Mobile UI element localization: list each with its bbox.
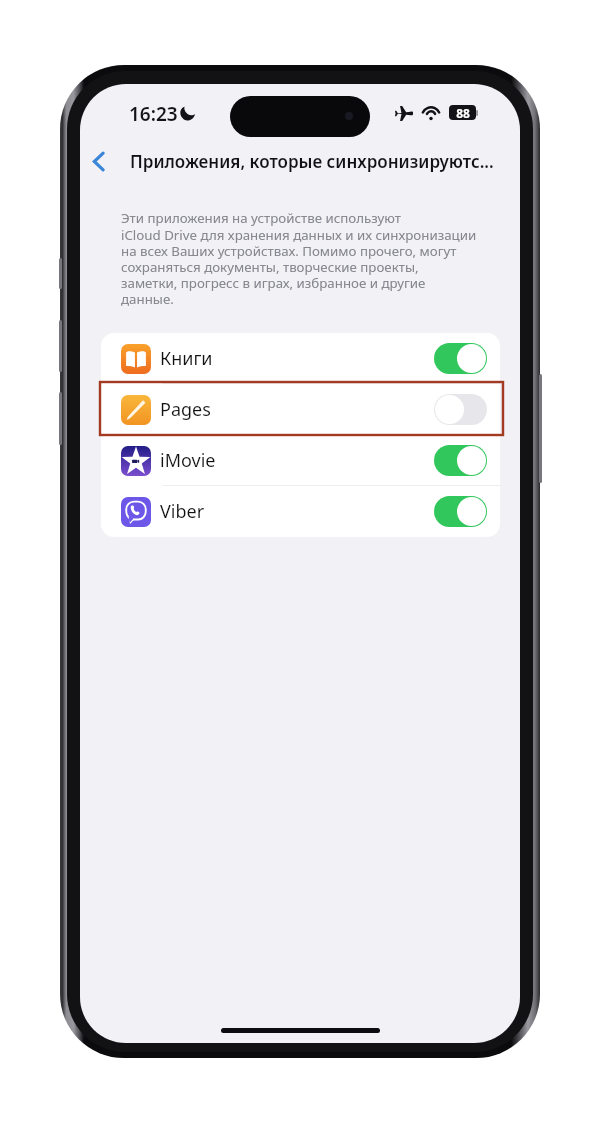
staticText: 88 [456,105,470,120]
button[interactable]: Toggle on [434,496,487,527]
button[interactable]: Книги [101,333,500,384]
button[interactable]: Toggle on [434,445,487,476]
button[interactable]: Toggle on [434,343,487,374]
staticText: 16:23 [129,101,178,127]
button[interactable]: Pages [101,384,500,435]
button[interactable]: Viber [101,486,500,537]
button[interactable]: iMovie [101,435,500,486]
staticText: Pages [160,397,211,422]
staticText: Приложения, которые синхронизируютс... [130,150,494,173]
button[interactable]: Back [80,143,116,179]
staticText: Книги [160,346,213,371]
button[interactable]: Toggle off [434,394,487,425]
staticText: Эти приложения на устройстве используют … [121,209,477,308]
staticText: Viber [160,499,205,524]
staticText: iMovie [160,448,216,473]
